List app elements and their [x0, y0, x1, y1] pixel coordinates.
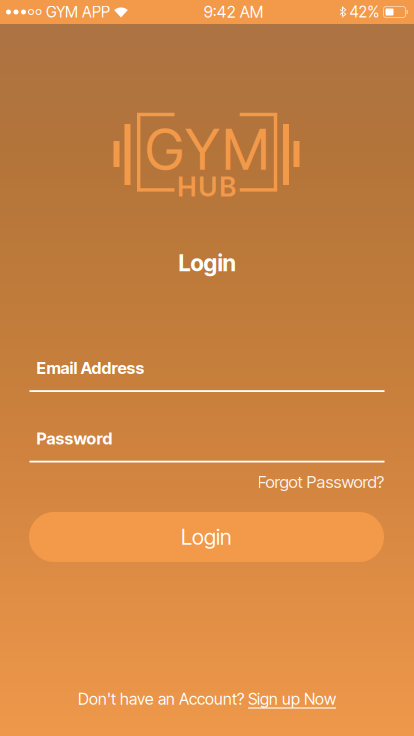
staticText: Password: [36, 428, 112, 448]
staticText: Don't have an Account?: [78, 689, 248, 709]
button[interactable]: Login: [29, 512, 384, 562]
staticText: Forgot Password?: [257, 472, 384, 492]
staticText: Email Address: [36, 358, 144, 378]
staticText: 9:42 AM: [204, 2, 264, 22]
staticText: Sign up Now: [248, 689, 336, 709]
staticText: GYM APP: [46, 3, 110, 21]
staticText: 42%: [349, 3, 379, 21]
staticText: Login: [178, 249, 235, 277]
staticText: Login: [181, 524, 232, 550]
staticText: HUB: [177, 171, 236, 203]
button[interactable]: Don't have an Account?: [78, 686, 336, 712]
button[interactable]: Forgot Password?: [29, 467, 384, 497]
staticText: GYM: [145, 115, 269, 183]
